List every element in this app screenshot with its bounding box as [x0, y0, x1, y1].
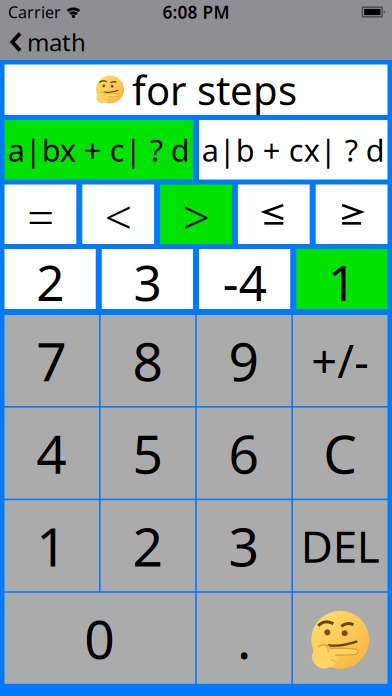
button[interactable]: 7	[4, 315, 99, 406]
staticText: 9	[229, 325, 260, 396]
button[interactable]: DEL	[293, 500, 387, 591]
staticText: =	[27, 184, 54, 244]
button[interactable]: 1	[296, 249, 387, 309]
staticText: 1	[36, 510, 67, 581]
staticText: C	[323, 418, 357, 488]
button[interactable]: Greater than or equal	[316, 184, 387, 244]
staticText: +/-	[311, 330, 369, 391]
button[interactable]: =	[4, 184, 76, 244]
button[interactable]: 9	[197, 315, 291, 406]
staticText: 1	[328, 249, 356, 309]
staticText: 8	[132, 325, 163, 396]
staticText: 2	[36, 249, 64, 309]
button[interactable]: <	[82, 184, 154, 244]
staticText: 5	[132, 418, 163, 488]
staticText: 6:08 PM	[162, 0, 229, 23]
staticText: DEL	[301, 516, 380, 575]
button[interactable]: Less than or equal	[238, 184, 310, 244]
staticText: 2	[132, 510, 163, 581]
button[interactable]: 4	[4, 408, 99, 499]
button[interactable]: 1	[4, 500, 99, 591]
staticText: 3	[133, 249, 161, 309]
button[interactable]: 0	[4, 593, 195, 684]
button[interactable]: 3	[102, 249, 193, 309]
button[interactable]: 2	[101, 500, 195, 591]
staticText: 4	[36, 418, 67, 488]
button[interactable]: a|bx + c| ? d	[4, 120, 193, 179]
button[interactable]: 3	[197, 500, 291, 591]
staticText: math	[27, 26, 86, 58]
button[interactable]: Show steps	[293, 593, 387, 684]
button[interactable]: 8	[101, 315, 195, 406]
button[interactable]: Back	[0, 26, 86, 58]
button[interactable]: .	[197, 593, 291, 684]
staticText: for steps	[132, 63, 297, 116]
button[interactable]: -4	[199, 249, 290, 309]
button[interactable]: C	[293, 408, 387, 499]
staticText: <	[105, 184, 132, 244]
staticText: a|bx + c| ? d	[8, 129, 190, 170]
staticText: >	[182, 184, 209, 244]
button[interactable]: a|b + cx| ? d	[199, 120, 387, 179]
staticText: Carrier	[8, 1, 61, 23]
button[interactable]: 5	[101, 408, 195, 499]
staticText: 7	[36, 325, 67, 396]
staticText: 6	[229, 418, 260, 488]
staticText: a|b + cx| ? d	[202, 129, 385, 170]
staticText: 0	[84, 603, 115, 674]
staticText: .	[237, 603, 251, 674]
button[interactable]: >	[160, 184, 232, 244]
button[interactable]: 6	[197, 408, 291, 499]
staticText: 3	[229, 510, 260, 581]
button[interactable]: 2	[4, 249, 96, 309]
staticText: -4	[223, 249, 267, 309]
button[interactable]: +/-	[293, 315, 387, 406]
